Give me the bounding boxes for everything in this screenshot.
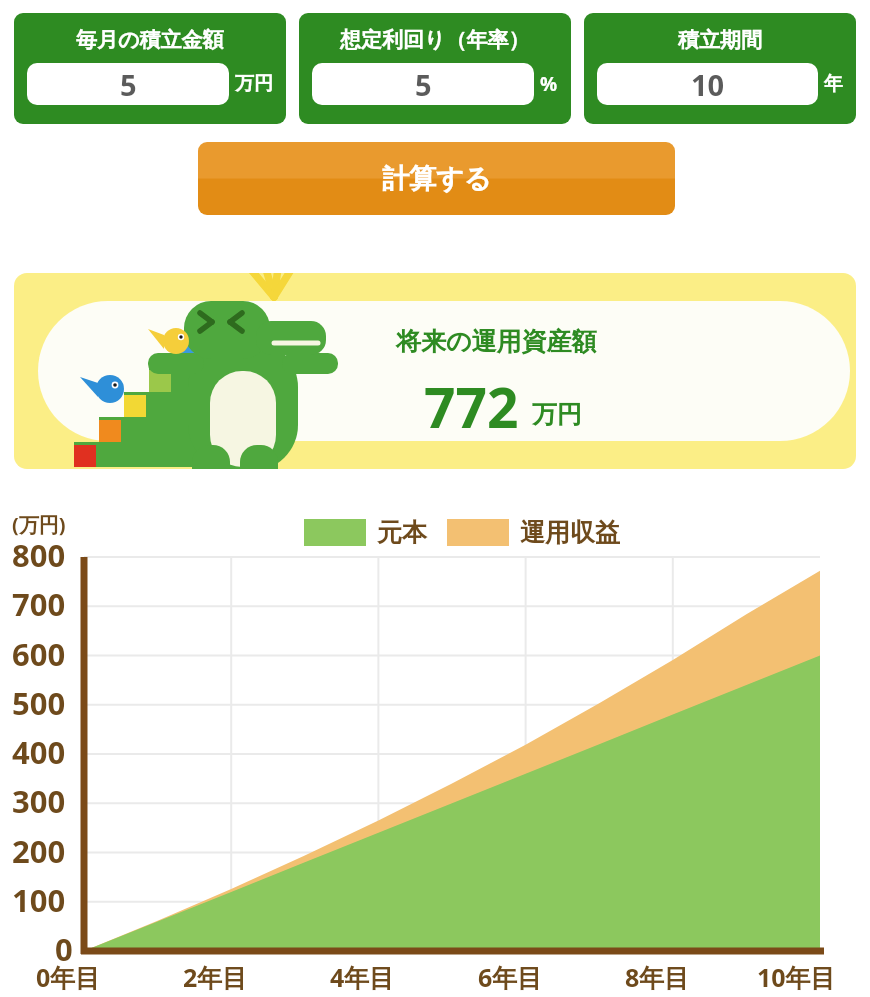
staticText: 毎月の積立金額	[76, 27, 224, 53]
staticText: 10	[691, 65, 725, 104]
staticText: 100	[12, 879, 66, 921]
staticText: 万円	[532, 399, 582, 430]
staticText: 万円	[235, 72, 273, 96]
button[interactable]: 計算する	[198, 142, 675, 215]
staticText: 5	[120, 65, 137, 104]
button[interactable]: 想定利回り（年率）	[299, 13, 571, 124]
staticText: 2年目	[183, 960, 248, 994]
staticText: 計算する	[382, 162, 492, 196]
staticText: 想定利回り（年率）	[340, 27, 530, 53]
staticText: 0	[55, 928, 73, 970]
staticText: 運用収益	[520, 517, 620, 548]
staticText: 将来の運用資産額	[396, 326, 597, 357]
staticText: 400	[12, 731, 66, 773]
staticText: %	[540, 71, 558, 97]
staticText: 772	[424, 369, 519, 444]
staticText: 10年目	[757, 960, 836, 994]
staticText: 200	[12, 830, 66, 872]
staticText: 6年目	[478, 960, 543, 994]
staticText: 8年目	[625, 960, 690, 994]
staticText: 800	[12, 534, 66, 576]
staticText: 積立期間	[678, 27, 762, 53]
staticText: 4年目	[330, 960, 395, 994]
staticText: 0年目	[36, 960, 101, 994]
staticText: 300	[12, 780, 66, 822]
button[interactable]: 毎月の積立金額	[14, 13, 286, 124]
staticText: 5	[415, 65, 432, 104]
button[interactable]: 積立期間	[584, 13, 856, 124]
staticText: 年	[824, 72, 843, 96]
staticText: 600	[12, 633, 66, 675]
staticText: 元本	[377, 517, 427, 548]
staticText: 700	[12, 583, 66, 625]
staticText: 500	[12, 682, 66, 724]
staticText: (万円)	[12, 511, 66, 538]
